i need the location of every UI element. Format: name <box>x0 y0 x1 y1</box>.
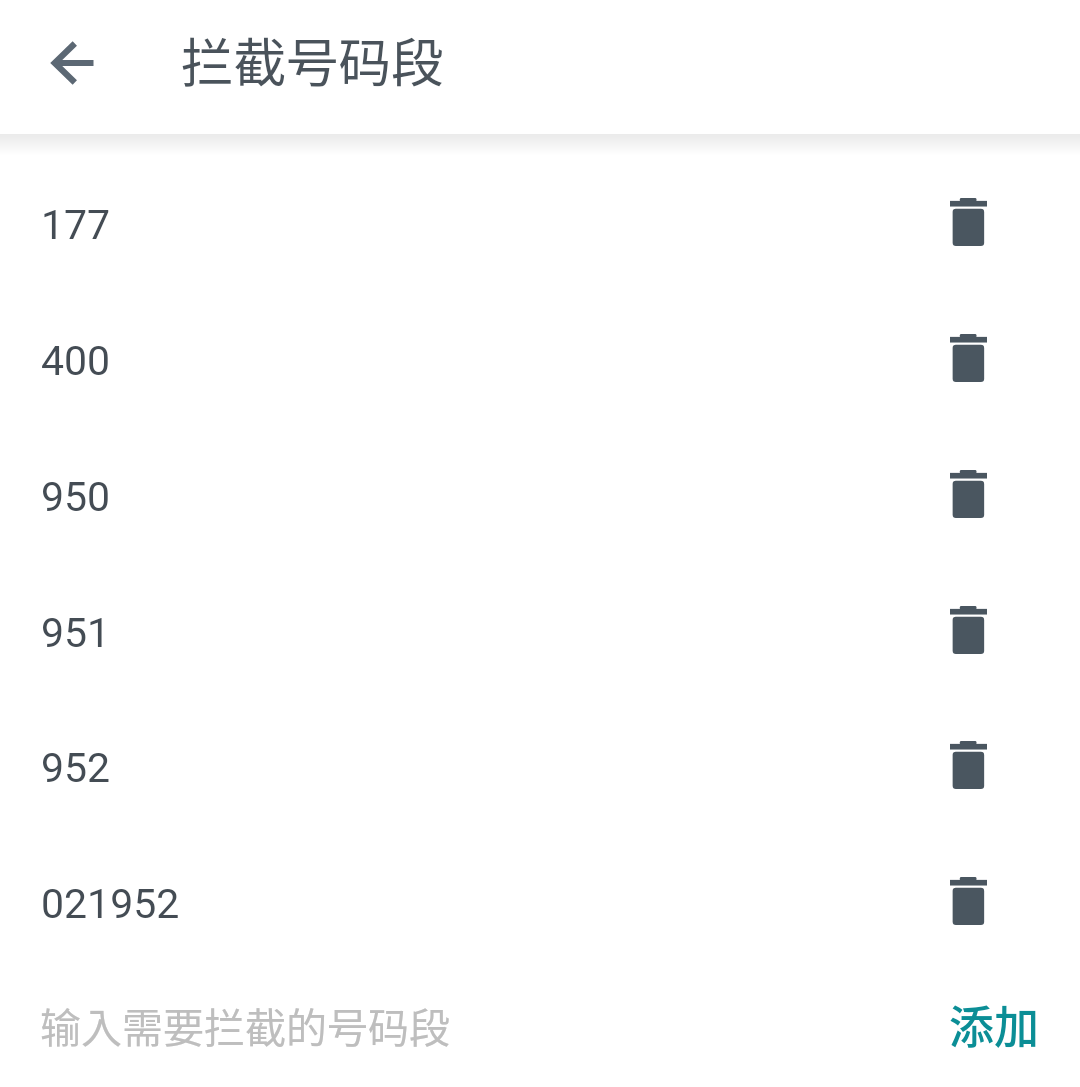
staticText: 输入需要拦截的号码段 <box>40 995 450 1054</box>
staticText: 951 <box>41 609 111 657</box>
button[interactable]: 添加 <box>927 978 1062 1071</box>
staticText: 021952 <box>41 880 180 928</box>
staticText: 950 <box>41 473 111 521</box>
button[interactable]: Delete <box>950 334 1023 382</box>
button[interactable]: Delete <box>950 877 1023 925</box>
button[interactable]: 952 <box>0 700 1080 836</box>
button[interactable]: Delete <box>950 606 1023 654</box>
staticText: 177 <box>41 201 111 249</box>
button[interactable]: Delete <box>950 470 1023 518</box>
button[interactable]: 400 <box>0 293 1080 429</box>
staticText: 400 <box>41 337 111 385</box>
button[interactable]: Delete <box>950 198 1023 246</box>
button[interactable]: 输入需要拦截的号码段 <box>0 967 927 1087</box>
button[interactable]: Delete <box>950 741 1023 789</box>
staticText: 拦截号码段 <box>181 21 444 97</box>
button[interactable]: Back <box>30 21 114 105</box>
button[interactable]: 950 <box>0 429 1080 565</box>
staticText: 添加 <box>949 992 1040 1057</box>
button[interactable]: 951 <box>0 565 1080 701</box>
button[interactable]: 177 <box>0 157 1080 293</box>
button[interactable]: 021952 <box>0 836 1080 972</box>
staticText: 952 <box>41 744 111 792</box>
